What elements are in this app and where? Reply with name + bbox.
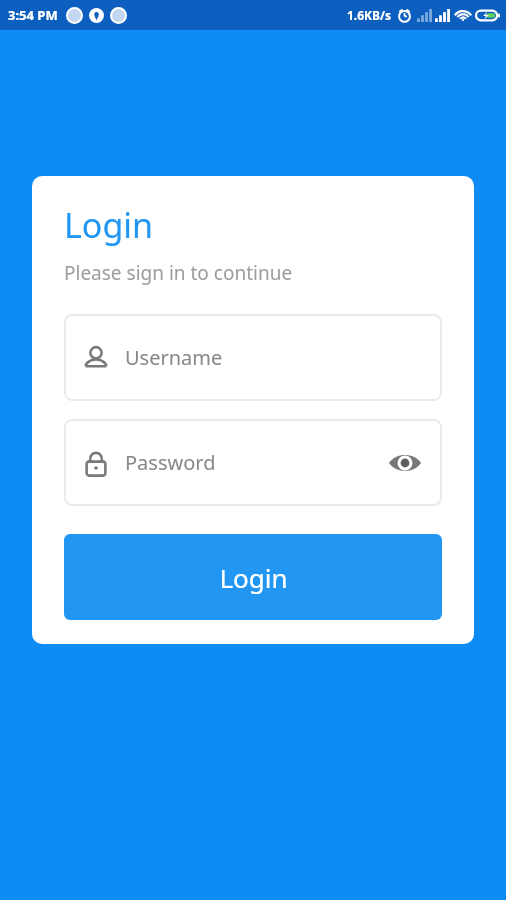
button[interactable]: Password	[64, 419, 442, 506]
button[interactable]: Login	[64, 534, 442, 620]
staticText: Please sign in to continue	[64, 260, 293, 286]
other: Username	[84, 345, 108, 371]
other: Password	[84, 449, 108, 477]
button[interactable]: Show password	[388, 450, 422, 476]
staticText: 1.6KB/s	[347, 7, 392, 23]
staticText: Login	[64, 202, 154, 248]
staticText: 3:54 PM	[8, 6, 58, 24]
button[interactable]: Username	[64, 314, 442, 401]
staticText: Login	[219, 560, 288, 595]
staticText: Password	[125, 449, 388, 476]
staticText: Username	[125, 344, 422, 371]
